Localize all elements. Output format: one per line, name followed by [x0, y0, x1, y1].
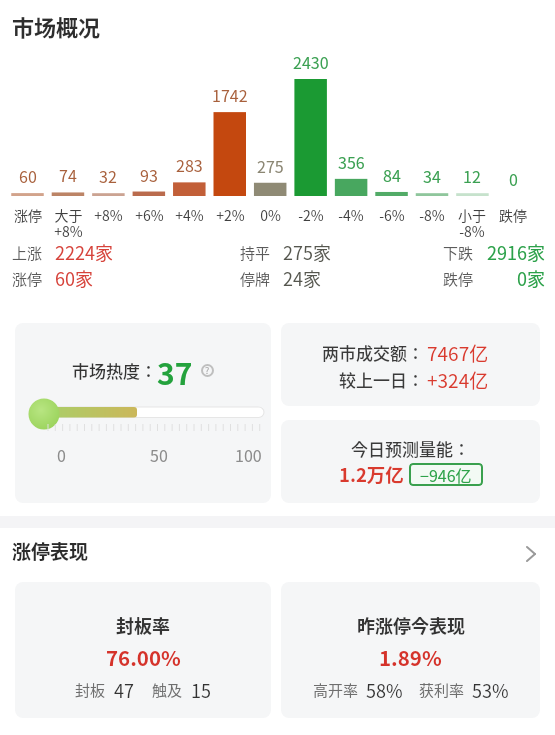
staticText: 2224家 — [55, 239, 113, 265]
button[interactable] — [281, 420, 540, 503]
button[interactable] — [15, 582, 271, 718]
staticText: 74 — [59, 163, 77, 186]
button[interactable] — [281, 582, 540, 718]
staticText: 1.89% — [379, 642, 442, 672]
staticText: +4% — [175, 205, 204, 225]
button[interactable] — [281, 323, 540, 406]
staticText: 两市成交额： — [322, 340, 424, 365]
staticText: 跌停 — [443, 268, 474, 290]
staticText: 275家 — [283, 239, 331, 265]
staticText: -6% — [379, 205, 405, 225]
staticText: 24家 — [283, 265, 321, 291]
button[interactable] — [15, 323, 271, 503]
staticText: 获利率 — [419, 679, 465, 701]
staticText: 50 — [150, 443, 168, 466]
staticText: 12 — [463, 164, 481, 187]
staticText: 上涨 — [12, 242, 43, 264]
staticText: 高开率 — [313, 679, 359, 701]
staticText: 今日预测量能： — [351, 436, 470, 461]
staticText: 市场热度： — [72, 358, 157, 383]
staticText: 275 — [257, 154, 284, 177]
staticText: 持平 — [240, 242, 271, 264]
button[interactable] — [0, 534, 555, 568]
staticText: 小于 -8% — [458, 205, 486, 241]
staticText: 58% — [366, 677, 403, 703]
staticText: 15 — [191, 677, 211, 703]
staticText: 较上一日： — [339, 367, 424, 392]
staticText: 触及 — [152, 679, 183, 701]
staticText: 1742 — [212, 83, 248, 106]
staticText: 60家 — [55, 265, 93, 291]
staticText: 2430 — [293, 50, 329, 73]
staticText: 100 — [235, 443, 262, 466]
staticText: 大于 +8% — [54, 205, 83, 241]
staticText: 封板 — [75, 679, 106, 701]
staticText: 下跌 — [443, 242, 474, 264]
staticText: +8% — [94, 205, 123, 225]
staticText: +2% — [216, 205, 245, 225]
staticText: 涨停 — [12, 268, 43, 290]
staticText: +6% — [135, 205, 164, 225]
staticText: 84 — [383, 163, 401, 186]
staticText: -4% — [338, 205, 364, 225]
staticText: 0家 — [517, 265, 545, 291]
staticText: 封板率 — [116, 612, 170, 638]
staticText: 0 — [57, 443, 66, 466]
staticText: 283 — [176, 153, 203, 176]
staticText: +324亿 — [427, 366, 489, 394]
staticText: 7467亿 — [427, 339, 489, 367]
staticText: 37 — [157, 350, 193, 390]
staticText: 76.00% — [106, 642, 181, 672]
staticText: -2% — [298, 205, 324, 225]
staticText: 32 — [99, 164, 117, 187]
staticText: 涨停 — [14, 205, 42, 225]
staticText: 涨停表现 — [12, 537, 89, 565]
staticText: 60 — [19, 164, 37, 187]
staticText: 2916家 — [487, 239, 545, 265]
staticText: 1.2万亿 — [339, 461, 404, 488]
staticText: 0% — [260, 205, 281, 225]
staticText: -8% — [419, 205, 445, 225]
staticText: 0 — [509, 167, 518, 190]
staticText: 47 — [114, 677, 134, 703]
staticText: 356 — [338, 150, 365, 173]
staticText: 53% — [472, 677, 509, 703]
staticText: 93 — [140, 163, 158, 186]
staticText: 跌停 — [499, 205, 527, 225]
staticText: 市场概况 — [12, 10, 101, 42]
staticText: 34 — [423, 164, 441, 187]
staticText: 停牌 — [240, 268, 271, 290]
staticText: 昨涨停今表现 — [357, 612, 465, 638]
staticText: −946亿 — [420, 463, 472, 486]
staticText: ? — [205, 364, 210, 377]
